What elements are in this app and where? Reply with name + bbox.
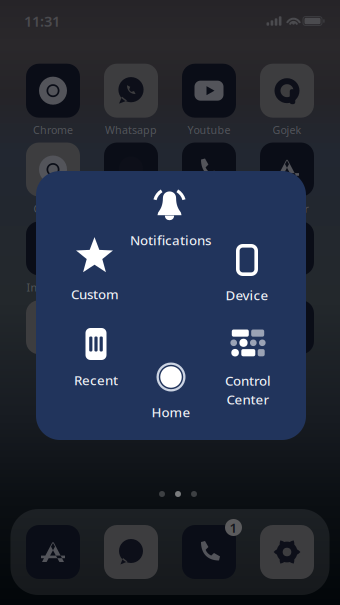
button[interactable]: Twitter: [248, 221, 326, 295]
button[interactable]: Weather: [248, 142, 326, 216]
button[interactable]: Youtube: [170, 64, 248, 137]
staticText: Youtube: [187, 123, 230, 137]
button[interactable]: Tokopedia: [170, 221, 248, 295]
button[interactable]: Files: [92, 300, 170, 373]
button[interactable]: Messages: [104, 525, 158, 579]
staticText: 1: [229, 519, 237, 536]
staticText: Tokopedia: [183, 280, 235, 295]
staticText: Control: [225, 372, 271, 389]
button[interactable]: Video: [14, 300, 92, 373]
button[interactable]: Whatsapp: [92, 64, 170, 137]
staticText: Chrome: [33, 123, 73, 137]
staticText: Recent: [74, 371, 118, 389]
staticText: Instagram: [26, 280, 79, 295]
staticText: Custom: [71, 285, 119, 303]
staticText: Gojek: [272, 123, 301, 137]
button[interactable]: Settings: [260, 525, 314, 579]
button[interactable]: Phone: [182, 525, 236, 579]
staticText: Home: [151, 403, 190, 421]
button[interactable]: Notes: [92, 142, 170, 216]
button[interactable]: App Store: [26, 525, 80, 579]
staticText: 11:31: [24, 11, 60, 31]
staticText: Center: [226, 390, 269, 408]
staticText: Weather: [265, 201, 308, 216]
button[interactable]: Gojek: [248, 64, 326, 137]
button[interactable]: Mail: [170, 300, 248, 373]
button[interactable]: Control: [0, 0, 340, 605]
button[interactable]: Maps: [170, 142, 248, 216]
button[interactable]: Instagram: [14, 221, 92, 295]
button[interactable]: Spotify: [92, 221, 170, 295]
button[interactable]: Notifications: [0, 0, 340, 605]
staticText: Whatsapp: [105, 123, 157, 137]
button[interactable]: Custom: [0, 0, 340, 605]
staticText: Spotify: [113, 280, 148, 295]
button[interactable]: Home: [0, 0, 340, 605]
button[interactable]: Camera: [14, 142, 92, 216]
button[interactable]: Chrome: [14, 64, 92, 137]
button[interactable]: Device: [0, 0, 340, 605]
staticText: Device: [225, 286, 268, 304]
button[interactable]: Recent: [0, 0, 340, 605]
staticText: Camera: [33, 201, 72, 216]
button[interactable]: Shopee: [248, 300, 326, 373]
staticText: Notifications: [130, 231, 211, 249]
